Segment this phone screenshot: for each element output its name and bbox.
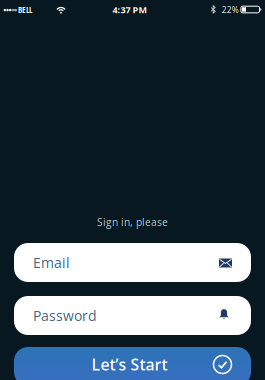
button[interactable]: Email [14, 243, 251, 282]
staticText: Email [33, 253, 70, 272]
staticText: 22% [222, 4, 239, 15]
button[interactable]: Password [14, 296, 251, 335]
staticText: 4:37 PM [112, 3, 147, 16]
button[interactable]: Let’s Start [14, 347, 251, 380]
staticText: Password [33, 306, 97, 325]
staticText: Sign in, please [97, 215, 168, 229]
staticText: Let’s Start [91, 354, 167, 375]
staticText: BELL [18, 4, 32, 16]
